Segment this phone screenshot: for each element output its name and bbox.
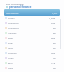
staticText: Loan [8, 56, 14, 59]
staticText: 400 [51, 51, 56, 54]
staticText: 1,200 [49, 16, 56, 19]
staticText: 75 [53, 56, 56, 59]
button[interactable]: Salary [0, 15, 64, 20]
button[interactable]: Utilities [0, 30, 64, 35]
staticText: Salary [8, 16, 15, 19]
staticText: Misc [8, 46, 14, 49]
button[interactable]: Transport [0, 25, 64, 30]
staticText: Transport [8, 26, 19, 29]
staticText: Full Accounting [6, 2, 24, 5]
staticText: 118 [51, 61, 56, 64]
button[interactable]: Gifts [0, 65, 64, 70]
staticText: Rent [8, 36, 14, 39]
button[interactable]: Rent [0, 35, 64, 40]
staticText: 60 [53, 41, 56, 44]
button[interactable]: Bills [0, 60, 64, 65]
staticText: 340 [51, 21, 56, 24]
staticText: Utilities [8, 31, 17, 34]
staticText: Fuel [8, 41, 13, 44]
staticText: Gifts [8, 66, 14, 69]
staticText: Bills [8, 61, 13, 64]
staticText: personal finance [9, 5, 32, 9]
button[interactable]: Groceries [0, 20, 64, 25]
staticText: 50 [53, 26, 56, 29]
staticText: 2,450 [52, 12, 58, 15]
staticText: 30 [53, 66, 56, 69]
button[interactable]: Savings [0, 50, 64, 55]
button[interactable]: Loan [0, 55, 64, 60]
button[interactable]: Total balance [4, 9, 60, 16]
staticText: Total balance [6, 12, 19, 15]
staticText: Savings [8, 51, 17, 54]
staticText: 900 [51, 36, 56, 39]
staticText: Groceries [8, 21, 19, 24]
staticText: 88 [53, 31, 56, 34]
staticText: 25 [53, 46, 56, 49]
button[interactable]: Fuel [0, 40, 64, 45]
button[interactable]: Misc [0, 45, 64, 50]
